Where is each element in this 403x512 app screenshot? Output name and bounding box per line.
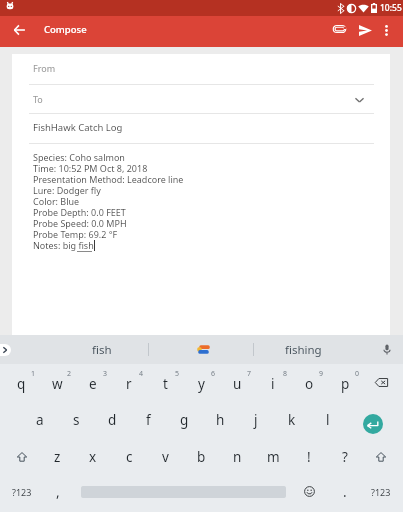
- staticText: k: [288, 411, 296, 429]
- staticText: b: [197, 448, 206, 466]
- staticText: s: [73, 411, 80, 429]
- staticText: ?123: [371, 486, 391, 498]
- button[interactable]: e: [75, 364, 111, 401]
- staticText: 8: [283, 369, 288, 379]
- button[interactable]: Voice input: [361, 335, 403, 364]
- button[interactable]: k: [274, 401, 310, 438]
- staticText: To: [33, 93, 43, 105]
- staticText: w: [52, 375, 63, 393]
- button[interactable]: s: [58, 401, 94, 438]
- button[interactable]: n: [219, 438, 255, 475]
- button[interactable]: w: [39, 364, 75, 401]
- button[interactable]: Shift: [4, 438, 39, 475]
- button[interactable]: Back: [7, 19, 32, 44]
- button[interactable]: d: [94, 401, 130, 438]
- staticText: ?: [342, 448, 348, 466]
- button[interactable]: Space: [76, 473, 291, 510]
- button[interactable]: u: [219, 364, 255, 401]
- staticText: 10:55: [380, 2, 402, 14]
- button[interactable]: g: [166, 401, 202, 438]
- staticText: n: [233, 448, 242, 466]
- staticText: z: [54, 448, 61, 466]
- staticText: j: [254, 411, 258, 429]
- button[interactable]: ?: [327, 438, 363, 475]
- staticText: 5: [175, 369, 180, 379]
- button[interactable]: fishing: [256, 335, 351, 364]
- staticText: Species: Coho salmon Time: 10:52 PM Oct …: [33, 151, 184, 251]
- staticText: i: [271, 375, 275, 393]
- button[interactable]: m: [255, 438, 291, 475]
- staticText: From: [33, 62, 56, 74]
- button[interactable]: .: [327, 473, 363, 510]
- staticText: 4: [139, 369, 144, 379]
- staticText: 1: [31, 369, 36, 379]
- button[interactable]: z: [39, 438, 75, 475]
- staticText: f: [146, 411, 151, 429]
- button[interactable]: fish: [53, 335, 151, 364]
- button[interactable]: Shift: [363, 438, 399, 475]
- button[interactable]: j: [238, 401, 274, 438]
- staticText: 3: [103, 369, 108, 379]
- button[interactable]: !: [291, 438, 327, 475]
- button[interactable]: r: [111, 364, 147, 401]
- button[interactable]: y: [183, 364, 219, 401]
- button[interactable]: f: [130, 401, 166, 438]
- staticText: fishing: [285, 342, 322, 358]
- button[interactable]: ?123: [363, 473, 399, 510]
- staticText: x: [89, 448, 97, 466]
- staticText: h: [216, 411, 225, 429]
- staticText: r: [126, 375, 132, 393]
- button[interactable]: o: [291, 364, 327, 401]
- staticText: 2: [67, 369, 72, 379]
- button[interactable]: x: [75, 438, 111, 475]
- button[interactable]: h: [202, 401, 238, 438]
- button[interactable]: Emoji: [291, 473, 327, 510]
- staticText: c: [126, 448, 133, 466]
- staticText: u: [233, 375, 242, 393]
- staticText: 0: [355, 369, 360, 379]
- staticText: t: [163, 375, 168, 393]
- staticText: v: [162, 448, 169, 466]
- staticText: a: [36, 411, 44, 429]
- button[interactable]: b: [183, 438, 219, 475]
- button[interactable]: ,: [40, 473, 76, 510]
- button[interactable]: Expand suggestions: [0, 344, 11, 356]
- button[interactable]: l: [310, 401, 346, 438]
- button[interactable]: v: [147, 438, 183, 475]
- button[interactable]: i: [255, 364, 291, 401]
- staticText: 7: [247, 369, 252, 379]
- button[interactable]: ?123: [4, 473, 40, 510]
- staticText: l: [326, 411, 330, 429]
- button[interactable]: a: [22, 401, 58, 438]
- button[interactable]: Backspace: [363, 364, 399, 401]
- staticText: g: [180, 411, 189, 429]
- staticText: fish: [92, 342, 112, 358]
- staticText: ?123: [12, 486, 32, 498]
- button[interactable]: t: [147, 364, 183, 401]
- staticText: m: [267, 448, 280, 466]
- staticText: Compose: [44, 23, 87, 36]
- staticText: 9: [319, 369, 324, 379]
- staticText: !: [307, 448, 311, 466]
- staticText: p: [341, 375, 350, 393]
- button[interactable]: p: [327, 364, 363, 401]
- button[interactable]: Sticker suggestion: [151, 335, 256, 364]
- staticText: 6: [211, 369, 216, 379]
- button[interactable]: Send: [352, 19, 378, 45]
- staticText: d: [108, 411, 117, 429]
- staticText: .: [343, 483, 347, 501]
- button[interactable]: Attach file: [327, 19, 353, 45]
- button[interactable]: c: [111, 438, 147, 475]
- button[interactable]: More options: [375, 20, 399, 44]
- button[interactable]: q: [4, 364, 39, 401]
- staticText: q: [17, 375, 26, 393]
- staticText: e: [89, 375, 97, 393]
- staticText: ,: [56, 483, 60, 501]
- staticText: o: [305, 375, 314, 393]
- button[interactable]: Enter: [346, 401, 399, 438]
- staticText: y: [198, 375, 205, 393]
- staticText: FishHawk Catch Log: [33, 121, 123, 134]
